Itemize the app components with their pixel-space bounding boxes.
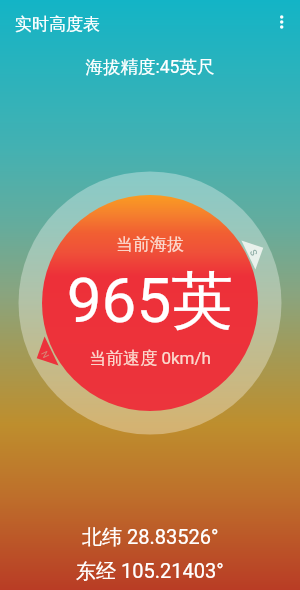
staticText: 东经 105.21403°: [76, 559, 224, 584]
staticText: 当前海拔: [0, 234, 300, 255]
staticText: 实时高度表: [15, 14, 100, 35]
staticText: 北纬 28.83526°: [82, 525, 219, 550]
staticText: 当前速度 0km/h: [0, 348, 300, 369]
button[interactable]: More options: [260, 2, 300, 42]
staticText: 海拔精度:45英尺: [0, 56, 300, 78]
staticText: 965英: [0, 262, 300, 340]
